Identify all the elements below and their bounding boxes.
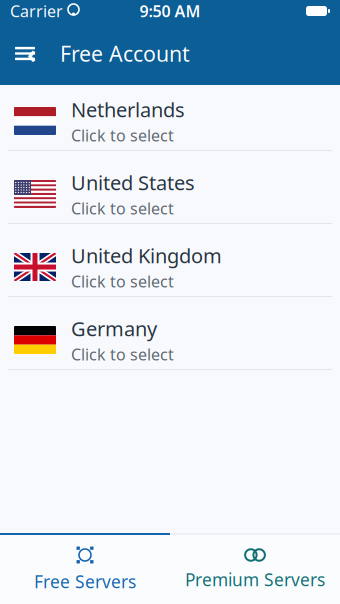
staticText: Carrier [10,0,63,22]
button[interactable]: Netherlands [0,85,340,158]
staticText: Click to select [71,271,174,292]
button[interactable]: Germany [0,304,340,377]
button[interactable]: United States [0,158,340,231]
staticText: Netherlands [71,96,185,123]
staticText: Free Account [60,39,190,68]
staticText: Click to select [71,344,174,365]
staticText: Premium Servers [185,568,325,591]
staticText: United Kingdom [71,242,222,269]
button[interactable]: Menu [6,33,44,73]
staticText: Click to select [71,125,174,146]
button[interactable]: Free Servers [0,535,170,604]
staticText: Germany [71,315,157,342]
staticText: Free Servers [34,570,136,593]
staticText: 9:50 AM [139,0,200,22]
staticText: ‹ [27,37,36,70]
button[interactable]: United Kingdom [0,231,340,304]
staticText: Click to select [71,198,174,219]
button[interactable]: Premium Servers [170,535,340,604]
staticText: United States [71,169,195,196]
